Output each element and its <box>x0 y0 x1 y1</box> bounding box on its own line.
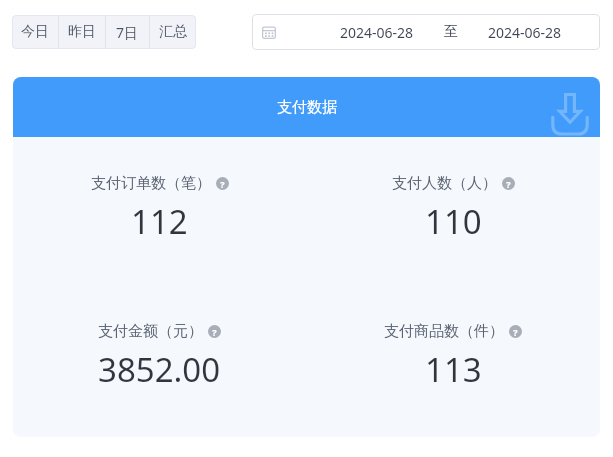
button[interactable]: 7日 <box>106 15 149 49</box>
button[interactable]: 昨日 <box>59 15 105 49</box>
button[interactable]: Download <box>548 92 592 136</box>
other: Calendar <box>262 25 276 39</box>
staticText: 支付商品数（件） <box>384 322 504 341</box>
staticText: 昨日 <box>68 23 96 41</box>
staticText: ? <box>513 326 518 338</box>
staticText: ? <box>506 178 511 190</box>
button[interactable]: 支付人数（人） <box>306 174 600 244</box>
staticText: 113 <box>425 347 482 392</box>
staticText: 3852.00 <box>98 347 221 392</box>
other: Help <box>509 325 522 338</box>
staticText: 至 <box>444 23 458 41</box>
button[interactable]: 支付金额（元） <box>13 322 306 392</box>
button[interactable]: 支付订单数（笔） <box>13 174 306 244</box>
staticText: 7日 <box>116 23 139 42</box>
staticText: 支付订单数（笔） <box>91 174 211 193</box>
staticText: 支付金额（元） <box>98 322 203 341</box>
other: Help <box>216 177 229 190</box>
button[interactable]: 今日 <box>12 15 58 49</box>
button[interactable]: 汇总 <box>150 15 196 49</box>
other: Help <box>208 325 221 338</box>
staticText: 112 <box>131 199 188 244</box>
button[interactable]: 支付商品数（件） <box>306 322 600 392</box>
other: Help <box>502 177 515 190</box>
staticText: 2024-06-28 <box>488 23 562 42</box>
staticText: 汇总 <box>159 23 187 41</box>
staticText: 支付数据 <box>277 98 337 117</box>
staticText: 110 <box>425 199 482 244</box>
staticText: ? <box>212 326 217 338</box>
staticText: ? <box>220 178 225 190</box>
staticText: 2024-06-28 <box>340 23 414 42</box>
staticText: 支付人数（人） <box>392 174 497 193</box>
button[interactable]: Calendar <box>252 14 600 50</box>
staticText: 今日 <box>21 23 49 41</box>
